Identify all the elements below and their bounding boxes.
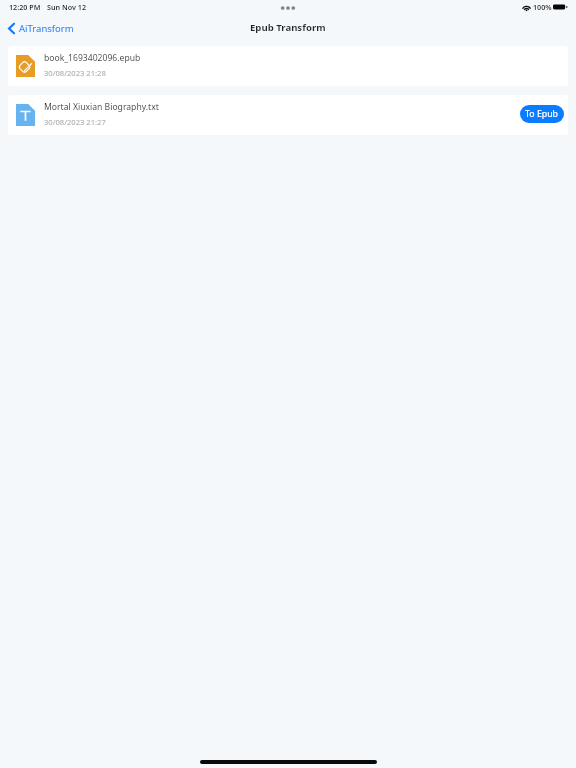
staticText: AiTransform xyxy=(19,22,74,35)
staticText: Sun Nov 12 xyxy=(47,2,87,12)
other: Wi-Fi xyxy=(522,4,531,12)
button[interactable]: AiTransform xyxy=(4,19,78,38)
staticText: book_1693402096.epub xyxy=(44,52,141,64)
button[interactable]: To Epub xyxy=(520,105,564,123)
staticText: 30/08/2023 21:28 xyxy=(44,68,106,78)
other: Multitasking options xyxy=(278,4,298,11)
staticText: 30/08/2023 21:27 xyxy=(44,117,106,127)
staticText: 12:20 PM xyxy=(9,2,41,12)
staticText: Mortal Xiuxian Biography.txt xyxy=(44,101,159,113)
staticText: To Epub xyxy=(525,108,559,120)
staticText: 100% xyxy=(533,2,552,12)
other: Battery full xyxy=(553,3,568,11)
button[interactable]: Mortal Xiuxian Biography.txt xyxy=(8,95,568,135)
button[interactable]: book_1693402096.epub xyxy=(8,46,568,86)
staticText: Epub Transform xyxy=(250,21,326,34)
